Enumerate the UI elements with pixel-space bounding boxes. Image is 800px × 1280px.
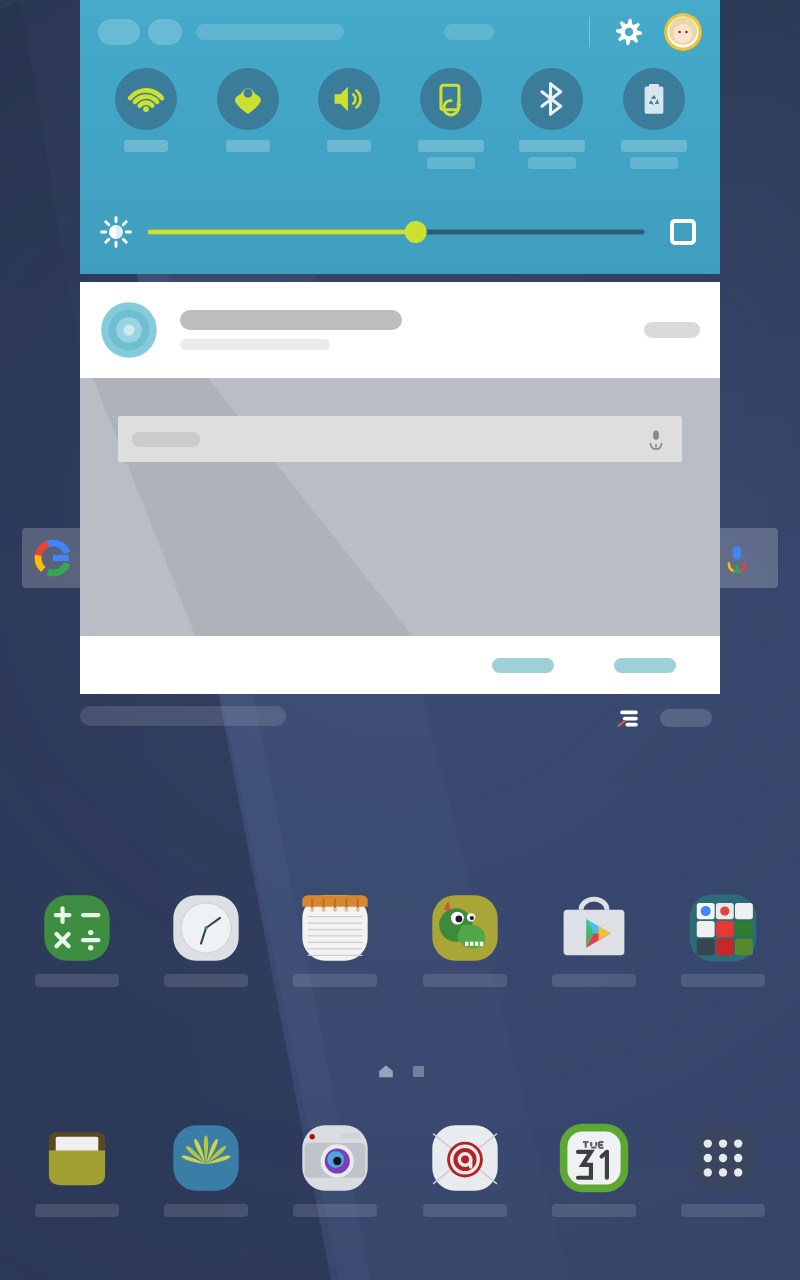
button[interactable]: Share — [476, 648, 570, 683]
button[interactable]: Gallery — [154, 1120, 258, 1217]
button[interactable]: Settings — [612, 15, 646, 49]
button[interactable]: Screen rotation — [407, 68, 495, 169]
button[interactable]: Google — [671, 890, 775, 987]
button[interactable]: Power saving — [610, 68, 698, 169]
button[interactable]: Email — [413, 1120, 517, 1217]
button[interactable]: Brightness — [150, 215, 642, 249]
button[interactable]: Bluetooth — [508, 68, 596, 169]
button[interactable]: Delete — [598, 648, 692, 683]
button[interactable]: Location — [204, 68, 292, 152]
button[interactable]: Auto brightness — [666, 215, 700, 249]
button[interactable]: User profile — [664, 13, 702, 51]
button[interactable]: My Files — [25, 1120, 129, 1217]
button[interactable]: Screenshot captured notification — [80, 282, 720, 694]
button[interactable]: Play Store — [542, 890, 646, 987]
button[interactable]: Clock — [154, 890, 258, 987]
button[interactable]: Sound — [305, 68, 393, 152]
button[interactable]: Memo — [283, 890, 387, 987]
button[interactable]: Clear all notifications — [612, 701, 646, 735]
button[interactable]: Wi-Fi — [102, 68, 190, 152]
button[interactable]: Google search — [22, 528, 778, 588]
button[interactable]: Apps — [671, 1120, 775, 1217]
button[interactable]: Calendar — [542, 1120, 646, 1217]
button[interactable]: Game — [413, 890, 517, 987]
button[interactable]: Camera — [283, 1120, 387, 1217]
button[interactable]: Calculator — [25, 890, 129, 987]
